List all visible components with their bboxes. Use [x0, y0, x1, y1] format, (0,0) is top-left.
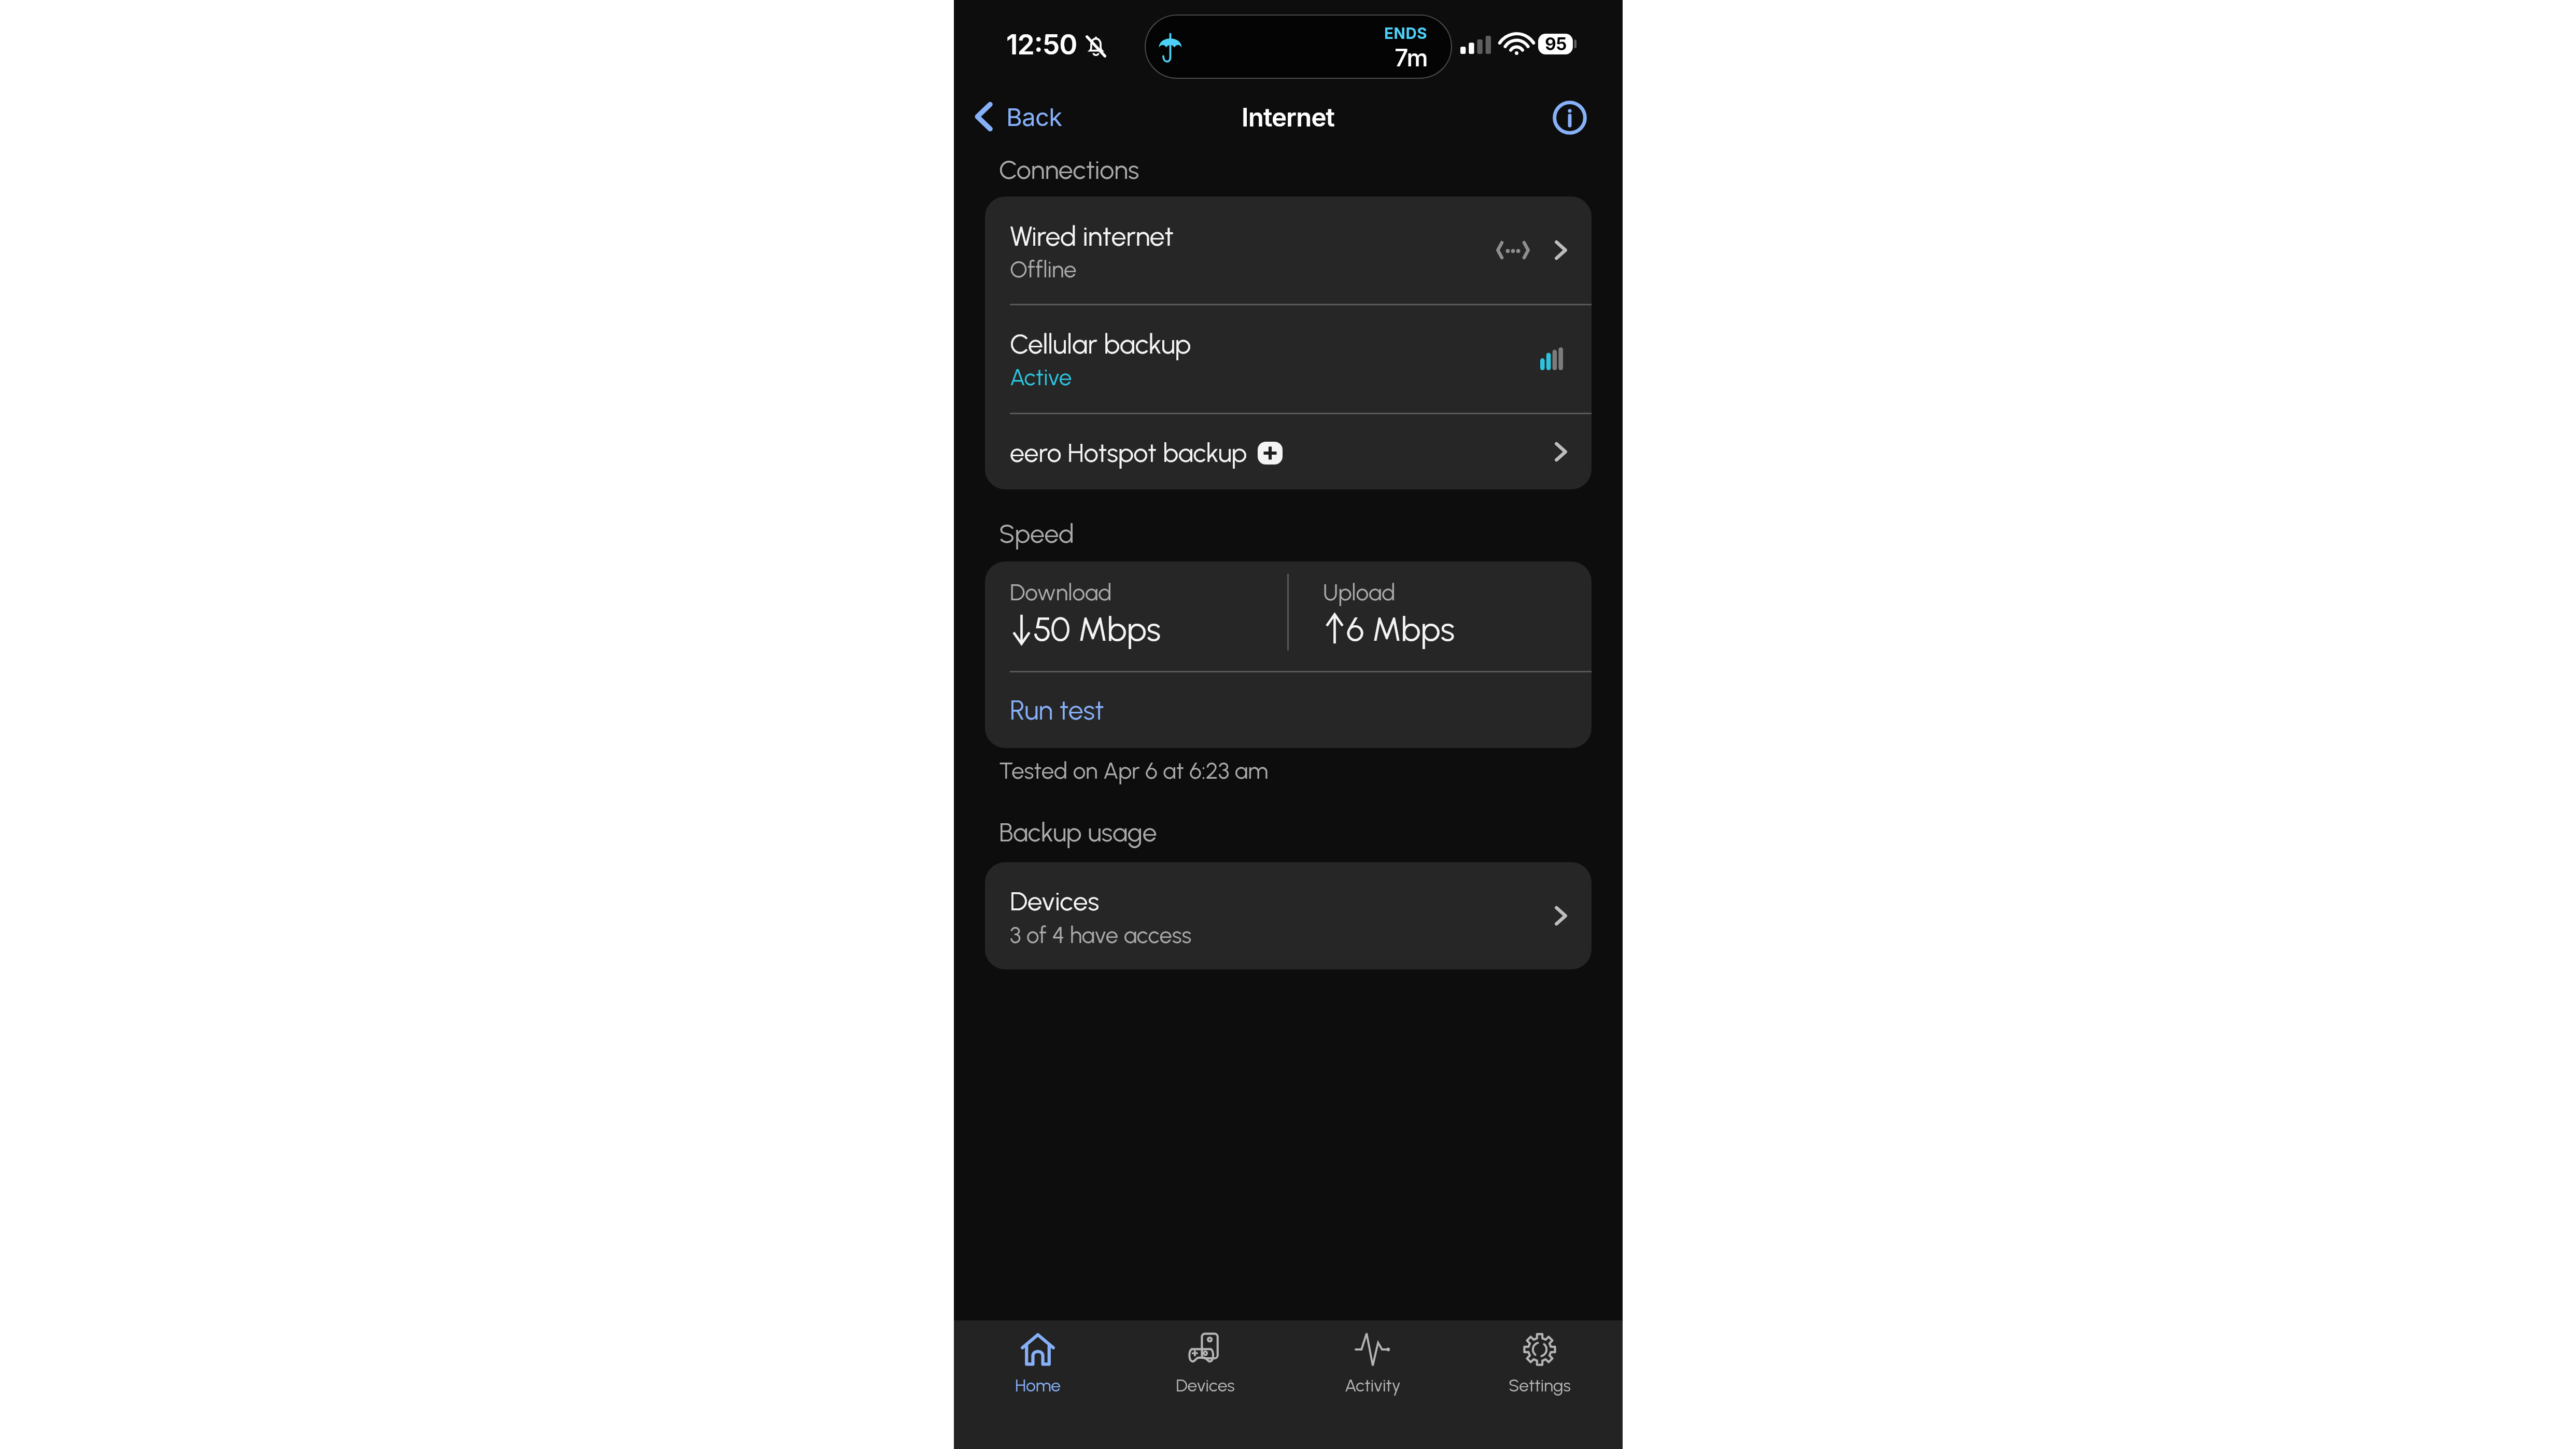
- staticText: Tested on Apr 6 at 6:23 am: [999, 757, 1269, 784]
- button[interactable]: Home: [954, 1320, 1121, 1449]
- staticText: Run test: [1010, 694, 1104, 726]
- staticText: Home: [1015, 1375, 1061, 1396]
- staticText: eero Hotspot backup: [1010, 437, 1247, 468]
- button[interactable]: Information: [1545, 93, 1595, 143]
- staticText: Download: [1010, 579, 1112, 606]
- button[interactable]: Cellular backup: [985, 305, 1592, 413]
- staticText: Wired internet: [1010, 220, 1174, 252]
- button[interactable]: Activity: [1289, 1320, 1456, 1449]
- staticText: 50 Mbps: [1033, 609, 1161, 649]
- staticText: Speed: [999, 518, 1074, 549]
- staticText: Back: [1006, 102, 1062, 132]
- staticText: Internet: [1242, 102, 1335, 133]
- staticText: 7m: [1395, 43, 1428, 72]
- staticText: Offline: [1010, 256, 1077, 283]
- staticText: Devices: [1176, 1375, 1235, 1396]
- staticText: 95: [1545, 33, 1567, 54]
- staticText: Upload: [1323, 579, 1396, 606]
- staticText: Devices: [1010, 885, 1100, 917]
- staticText: 3 of 4 have access: [1010, 922, 1192, 949]
- staticText: Connections: [999, 154, 1139, 185]
- button[interactable]: Run test: [985, 672, 1592, 748]
- staticText: ENDS: [1384, 24, 1428, 43]
- button[interactable]: Settings: [1456, 1320, 1623, 1449]
- button[interactable]: Back: [966, 95, 1072, 138]
- staticText: Settings: [1509, 1375, 1571, 1396]
- staticText: Backup usage: [999, 817, 1157, 848]
- staticText: Activity: [1345, 1375, 1401, 1396]
- button[interactable]: eero Hotspot backup: [985, 414, 1592, 489]
- button[interactable]: Devices: [1121, 1320, 1289, 1449]
- staticText: 6 Mbps: [1346, 609, 1455, 649]
- staticText: 12:50: [1006, 28, 1077, 61]
- staticText: Cellular backup: [1010, 328, 1191, 360]
- button[interactable]: Devices: [985, 862, 1592, 969]
- staticText: Active: [1010, 363, 1072, 391]
- button[interactable]: Wired internet: [985, 196, 1592, 304]
